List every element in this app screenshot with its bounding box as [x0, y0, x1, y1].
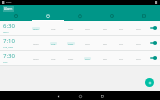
- staticText: SAT: [119, 27, 124, 30]
- button[interactable]: THU: [79, 40, 96, 46]
- staticText: THU: [85, 57, 90, 60]
- button[interactable]: Stopwatch: [64, 12, 96, 20]
- button[interactable]: 6:30: [0, 21, 160, 36]
- button[interactable]: SUN: [130, 40, 147, 46]
- button[interactable]: MON: [27, 55, 45, 61]
- button[interactable]: Add alarm: [145, 78, 154, 87]
- staticText: Clock: [6, 1, 12, 4]
- button[interactable]: WED: [62, 40, 79, 46]
- button[interactable]: Alarm: [32, 12, 64, 20]
- button[interactable]: Toggle alarm: [149, 25, 157, 31]
- staticText: SAT: [119, 57, 124, 60]
- staticText: SUN: [136, 57, 141, 60]
- staticText: THU: [3, 61, 8, 64]
- button[interactable]: FRI: [96, 55, 113, 61]
- staticText: FRI: [103, 57, 107, 60]
- staticText: TUE: [51, 57, 56, 60]
- staticText: SUN: [136, 27, 141, 30]
- button[interactable]: WED: [62, 25, 79, 31]
- button[interactable]: MON: [27, 40, 45, 46]
- staticText: SAT: [119, 42, 124, 45]
- button[interactable]: Timer: [96, 12, 128, 20]
- button[interactable]: SAT: [113, 55, 130, 61]
- button[interactable]: Bedtime: [128, 12, 160, 20]
- staticText: 7:10: [3, 37, 15, 45]
- button[interactable]: Recents: [98, 92, 106, 100]
- button[interactable]: SAT: [113, 25, 130, 31]
- staticText: TUE: [51, 42, 56, 45]
- button[interactable]: FRI: [96, 40, 113, 46]
- button[interactable]: TUE: [45, 25, 62, 31]
- staticText: THU: [85, 42, 90, 45]
- button[interactable]: Back: [54, 92, 62, 100]
- button[interactable]: 7:10: [0, 36, 160, 51]
- button[interactable]: World clock: [0, 12, 32, 20]
- button[interactable]: Toggle alarm: [149, 55, 157, 61]
- button[interactable]: WED: [62, 55, 79, 61]
- button[interactable]: TUE: [45, 55, 62, 61]
- staticText: MON: [33, 42, 39, 45]
- button[interactable]: TUE: [45, 40, 62, 46]
- button[interactable]: THU: [79, 55, 96, 61]
- staticText: WED: [68, 27, 74, 30]
- button[interactable]: THU: [79, 25, 96, 31]
- staticText: TUE: [51, 27, 56, 30]
- button[interactable]: Toggle alarm: [149, 40, 157, 46]
- button[interactable]: Alarm: [4, 7, 13, 11]
- staticText: SUN: [136, 42, 141, 45]
- button[interactable]: SUN: [130, 55, 147, 61]
- staticText: TUE, WED: [3, 46, 14, 49]
- button[interactable]: SUN: [130, 25, 147, 31]
- staticText: 7:30: [3, 52, 15, 60]
- staticText: FRI: [103, 42, 107, 45]
- staticText: Alarm: [4, 7, 13, 11]
- button[interactable]: MON: [27, 25, 45, 31]
- staticText: 6:30: [3, 22, 15, 30]
- staticText: WED: [68, 42, 74, 45]
- staticText: WED: [68, 57, 74, 60]
- button[interactable]: SAT: [113, 40, 130, 46]
- staticText: MON: [3, 31, 9, 34]
- button[interactable]: Home: [76, 92, 84, 100]
- button[interactable]: 7:30: [0, 51, 160, 66]
- staticText: MON: [33, 57, 39, 60]
- button[interactable]: FRI: [96, 25, 113, 31]
- staticText: THU: [85, 27, 90, 30]
- staticText: MON: [33, 27, 39, 30]
- staticText: FRI: [103, 27, 107, 30]
